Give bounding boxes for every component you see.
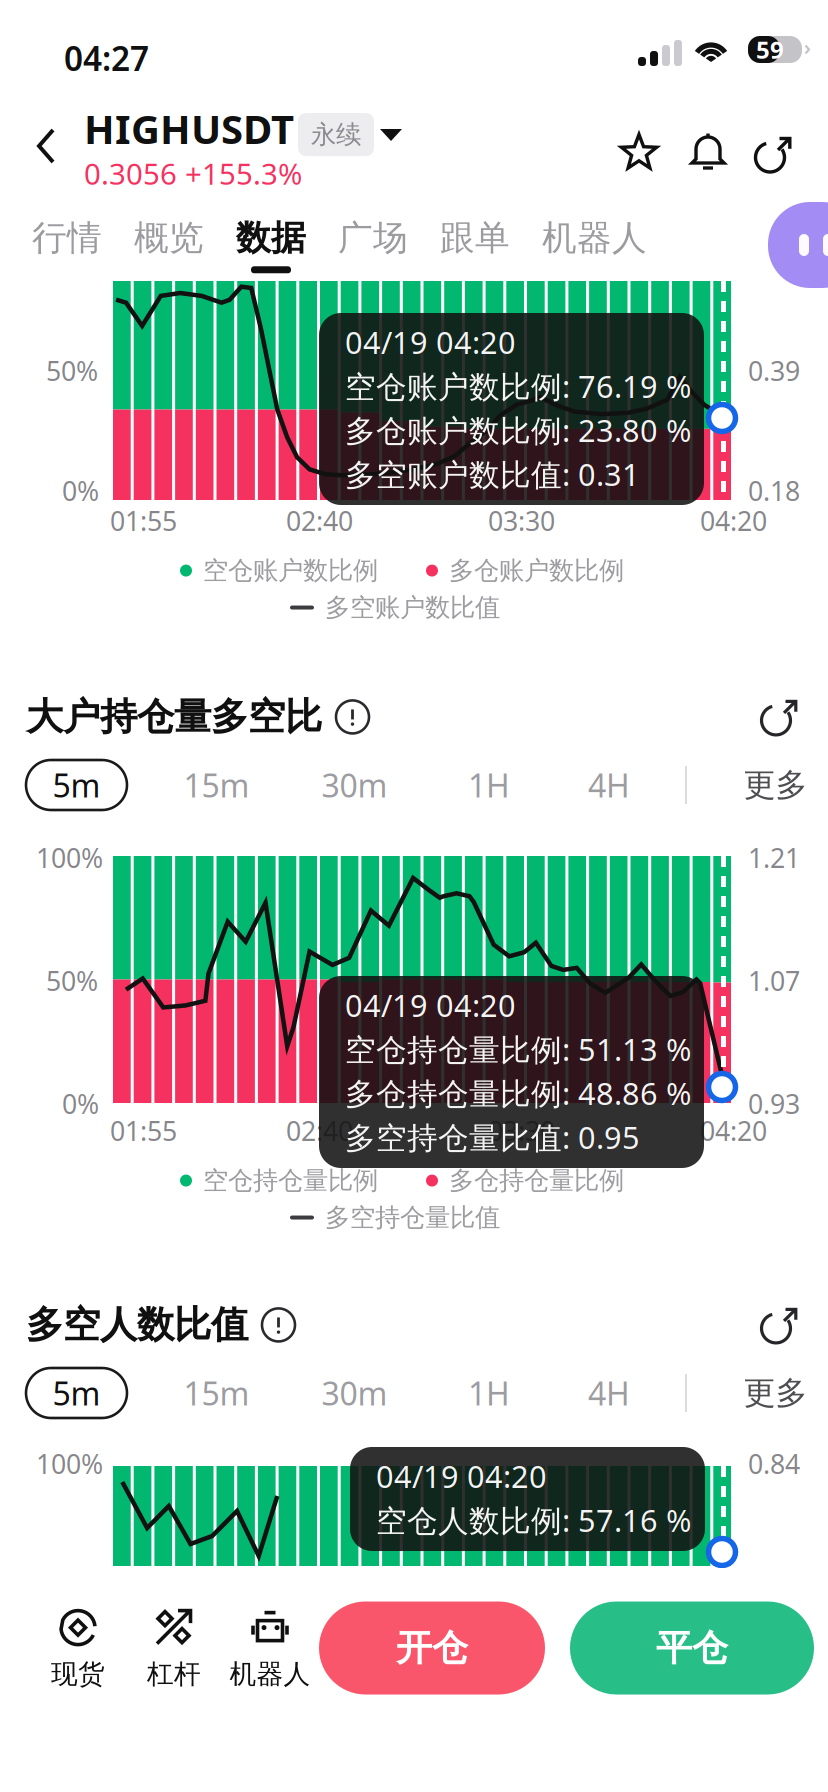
staticText: 02:40 [286, 1113, 353, 1148]
staticText: HIGHUSDT [84, 102, 294, 155]
staticText: 多空持仓量比值: 0.95 [345, 1117, 640, 1157]
staticText: 广场 [338, 217, 408, 259]
staticText: 空仓持仓量比例: 51.13 % [345, 1029, 691, 1069]
button[interactable]: 机器人 [526, 206, 663, 284]
staticText: 永续 [311, 119, 361, 150]
staticText: 1H [468, 1372, 510, 1414]
staticText: 01:55 [110, 1113, 177, 1148]
staticText: 更多 [743, 1373, 807, 1413]
staticText: 4H [588, 764, 630, 806]
button[interactable]: Back [26, 124, 66, 168]
button[interactable]: 数据 [220, 206, 322, 284]
staticText: 15m [183, 764, 249, 806]
staticText: 50% [46, 353, 98, 388]
staticText: 1.07 [748, 963, 800, 998]
staticText: 机器人 [542, 217, 647, 259]
staticText: 多仓账户数比例: 23.80 % [345, 410, 691, 450]
staticText: 03:30 [488, 1113, 555, 1148]
staticText: 机器人 [229, 1658, 310, 1690]
button[interactable]: 行情 [16, 206, 118, 284]
staticText: 04/19 04:20 [345, 985, 516, 1025]
staticText: 5m [52, 1372, 100, 1414]
button[interactable]: 广场 [322, 206, 424, 284]
staticText: 空仓持仓量比例 [203, 1165, 378, 1196]
button[interactable]: 开仓 [319, 1601, 545, 1694]
button[interactable]: 15m [127, 1368, 306, 1418]
staticText: 0% [62, 1086, 99, 1121]
staticText: 0.3056 +155.3% [84, 154, 302, 193]
button[interactable]: 现货 [30, 1590, 126, 1706]
staticText: 开仓 [396, 1626, 468, 1670]
button[interactable]: 更多 [729, 760, 822, 810]
staticText: 多空账户数比值: 0.31 [345, 454, 640, 494]
staticText: 现货 [51, 1658, 105, 1690]
staticText: 50% [46, 963, 98, 998]
staticText: 数据 [236, 217, 306, 259]
staticText: 04/19 04:20 [345, 322, 516, 362]
staticText: 0.93 [748, 1086, 800, 1121]
staticText: 多空持仓量比值 [325, 1202, 500, 1233]
staticText: 行情 [32, 217, 102, 259]
button[interactable]: AI assistant [768, 202, 828, 288]
button[interactable]: Share [750, 130, 798, 178]
button[interactable]: 永续 [298, 113, 374, 156]
staticText: 平仓 [656, 1626, 728, 1670]
staticText: 跟单 [440, 217, 510, 259]
button[interactable]: 1H [403, 1368, 575, 1418]
button[interactable]: Price alert [684, 128, 732, 176]
button[interactable]: Switch contract [374, 123, 408, 147]
button[interactable]: Open in full screen [758, 1303, 802, 1347]
button[interactable]: 1H [403, 760, 575, 810]
staticText: 空仓账户数比例: 76.19 % [345, 366, 691, 406]
button[interactable]: 机器人 [222, 1590, 318, 1706]
staticText: 03:30 [488, 503, 555, 538]
staticText: 0.18 [748, 473, 800, 508]
button[interactable]: Open in full screen [758, 695, 802, 739]
staticText: 1H [468, 764, 510, 806]
staticText: 多仓持仓量比例 [449, 1165, 624, 1196]
button[interactable]: 4H [575, 760, 643, 810]
staticText: 30m [321, 1372, 387, 1414]
staticText: 多空账户数比值 [325, 592, 500, 623]
staticText: 空仓账户数比例 [203, 555, 378, 586]
button[interactable]: 杠杆 [126, 1590, 222, 1706]
button[interactable]: 5m [26, 760, 127, 810]
staticText: 15m [183, 1372, 249, 1414]
staticText: 0.84 [748, 1446, 800, 1481]
staticText: 多仓持仓量比例: 48.86 % [345, 1073, 691, 1113]
button[interactable]: 平仓 [570, 1601, 814, 1694]
staticText: 空仓人数比例: 57.16 % [376, 1500, 691, 1540]
button[interactable]: 30m [306, 760, 403, 810]
button[interactable]: 15m [127, 760, 306, 810]
staticText: 100% [36, 1446, 103, 1481]
button[interactable]: 30m [306, 1368, 403, 1418]
staticText: 5m [52, 764, 100, 806]
staticText: 更多 [743, 765, 807, 805]
staticText: 30m [321, 764, 387, 806]
staticText: 多仓账户数比例 [449, 555, 624, 586]
button[interactable]: 概览 [118, 206, 220, 284]
staticText: 0.39 [748, 353, 800, 388]
button[interactable]: 跟单 [424, 206, 526, 284]
button[interactable]: 5m [26, 1368, 127, 1418]
button[interactable]: 更多 [729, 1368, 822, 1418]
staticText: 04:20 [700, 1113, 767, 1148]
button[interactable]: 4H [575, 1368, 643, 1418]
staticText: 01:55 [110, 503, 177, 538]
staticText: 0% [62, 473, 99, 508]
staticText: 04:20 [700, 503, 767, 538]
staticText: 02:40 [286, 503, 353, 538]
staticText: 04:27 [64, 36, 149, 80]
button[interactable]: Favorite [616, 130, 664, 178]
staticText: 多空人数比值 [26, 1302, 248, 1348]
staticText: 4H [588, 1372, 630, 1414]
staticText: 概览 [134, 217, 204, 259]
staticText: 59 [756, 34, 784, 65]
staticText: 杠杆 [147, 1658, 201, 1690]
staticText: 100% [36, 840, 103, 875]
staticText: 04/19 04:20 [376, 1456, 547, 1496]
staticText: 大户持仓量多空比 [26, 694, 322, 740]
staticText: 1.21 [748, 840, 800, 875]
